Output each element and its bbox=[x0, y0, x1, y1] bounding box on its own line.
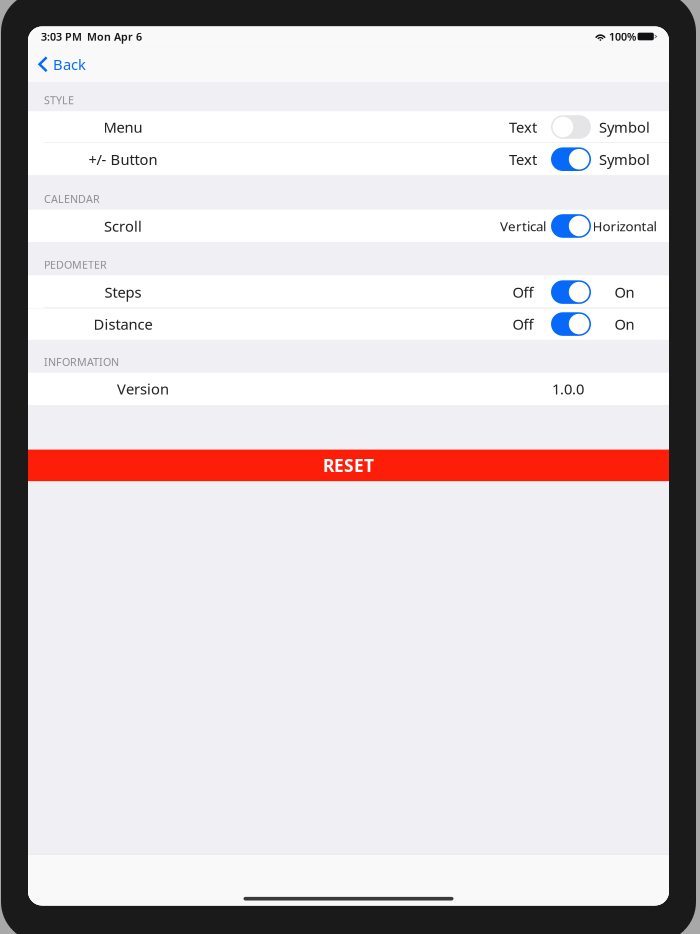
button[interactable]: Menu bbox=[28, 111, 669, 143]
button[interactable]: +/- Button bbox=[28, 143, 669, 175]
staticText: CALENDAR bbox=[44, 192, 100, 206]
staticText: Scroll bbox=[104, 216, 142, 236]
staticText: Horizontal bbox=[592, 217, 656, 235]
staticText: Symbol bbox=[599, 117, 650, 137]
staticText: Vertical bbox=[500, 217, 546, 235]
staticText: Off bbox=[512, 314, 533, 334]
staticText: 1.0.0 bbox=[552, 379, 584, 399]
staticText: Symbol bbox=[599, 149, 650, 169]
staticText: INFORMATION bbox=[44, 355, 119, 369]
staticText: PEDOMETER bbox=[44, 257, 107, 272]
button[interactable]: Distance bbox=[28, 308, 669, 340]
staticText: Text bbox=[509, 117, 537, 137]
button[interactable]: RESET bbox=[28, 450, 669, 481]
staticText: STYLE bbox=[44, 93, 74, 107]
staticText: On bbox=[614, 314, 634, 334]
staticText: Version bbox=[117, 379, 169, 399]
staticText: Steps bbox=[104, 282, 141, 302]
staticText: RESET bbox=[323, 454, 374, 477]
button[interactable]: Steps bbox=[28, 275, 669, 308]
staticText: On bbox=[614, 282, 634, 302]
staticText: Back bbox=[53, 54, 86, 74]
staticText: Off bbox=[512, 282, 533, 302]
button[interactable]: Back bbox=[28, 46, 94, 82]
staticText: 3:03 PM bbox=[41, 29, 82, 44]
staticText: Mon Apr 6 bbox=[87, 29, 142, 44]
staticText: Text bbox=[509, 149, 537, 169]
staticText: +/- Button bbox=[88, 149, 157, 169]
button[interactable]: Scroll bbox=[28, 210, 669, 242]
staticText: Distance bbox=[93, 314, 152, 334]
staticText: 100% bbox=[609, 29, 636, 44]
staticText: Menu bbox=[103, 117, 142, 137]
